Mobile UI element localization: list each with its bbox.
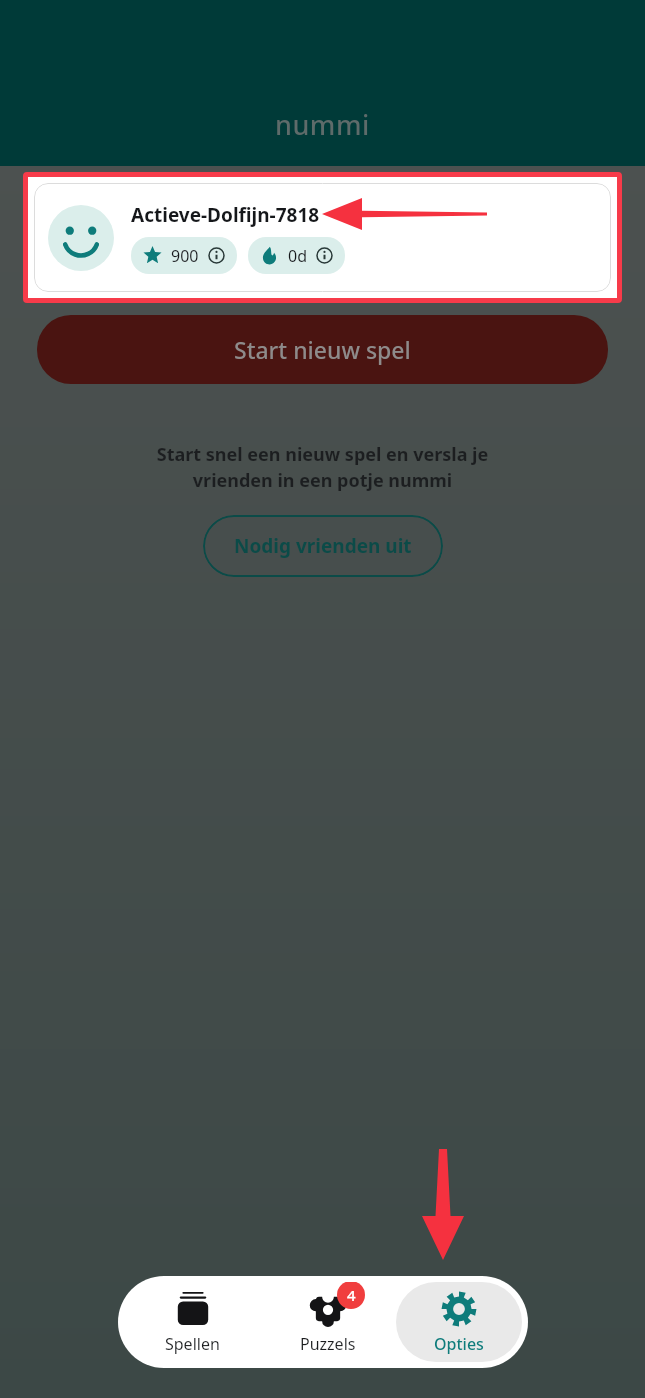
button[interactable]: Spellen: [124, 1282, 260, 1362]
staticText: Start snel een nieuw spel en versla je v…: [0, 442, 645, 493]
button[interactable]: 900: [131, 237, 237, 274]
button[interactable]: Actieve-Dolfijn-7818: [34, 183, 611, 292]
staticText: 900: [171, 245, 199, 267]
staticText: Start nieuw spel: [234, 334, 411, 365]
staticText: Puzzels: [300, 1333, 356, 1355]
staticText: 4: [347, 1285, 356, 1305]
staticText: Nodig vrienden uit: [234, 533, 412, 559]
other: Opties: [440, 1290, 478, 1328]
staticText: Spellen: [165, 1333, 220, 1355]
button[interactable]: 0d: [248, 237, 345, 274]
other: Puzzels: [309, 1290, 347, 1328]
staticText: Actieve-Dolfijn-7818: [131, 202, 320, 228]
staticText: Opties: [434, 1333, 484, 1355]
button[interactable]: Start nieuw spel: [37, 315, 608, 384]
button[interactable]: Opties: [396, 1282, 522, 1362]
staticText: 0d: [288, 245, 307, 267]
button[interactable]: Nodig vrienden uit: [203, 515, 443, 577]
staticText: nummi: [275, 106, 370, 143]
button[interactable]: Puzzels: [260, 1282, 396, 1362]
other: Spellen: [174, 1290, 212, 1328]
